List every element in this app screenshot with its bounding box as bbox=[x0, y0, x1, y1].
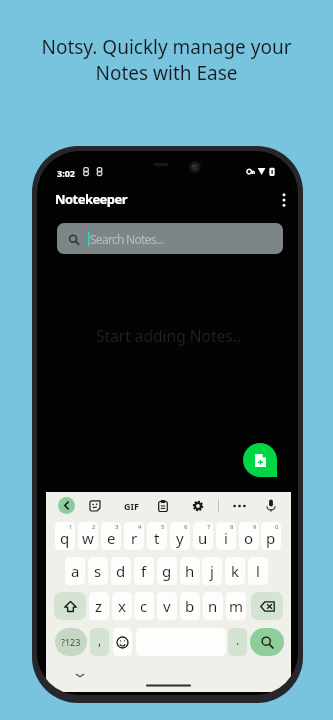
button[interactable]: Emoji bbox=[113, 628, 132, 656]
staticText: Notekeeper bbox=[55, 190, 127, 208]
button[interactable]: GIF bbox=[123, 498, 139, 513]
button[interactable]: 0 bbox=[261, 522, 281, 550]
button[interactable]: Settings bbox=[191, 499, 205, 513]
button[interactable]: Shift bbox=[54, 592, 86, 620]
button[interactable]: 1 bbox=[55, 522, 75, 550]
button[interactable]: Search bbox=[250, 628, 284, 656]
staticText: l bbox=[256, 561, 260, 581]
button[interactable]: d bbox=[111, 557, 131, 585]
staticText: b bbox=[185, 596, 195, 616]
staticText: t bbox=[154, 528, 160, 548]
staticText: p bbox=[266, 528, 276, 548]
staticText: w bbox=[82, 528, 94, 548]
button[interactable]: f bbox=[134, 557, 154, 585]
button[interactable]: Backspace bbox=[251, 592, 283, 620]
staticText: f bbox=[141, 561, 147, 581]
staticText: g bbox=[162, 561, 172, 581]
staticText: e bbox=[107, 528, 116, 548]
button[interactable]: h bbox=[180, 557, 200, 585]
button[interactable]: Back bbox=[58, 497, 75, 514]
staticText: o bbox=[244, 528, 254, 548]
staticText: ?123 bbox=[61, 636, 81, 648]
staticText: 8 bbox=[230, 523, 234, 531]
staticText: c bbox=[140, 596, 148, 616]
staticText: GIF bbox=[124, 500, 139, 512]
staticText: k bbox=[231, 561, 240, 581]
button[interactable]: . bbox=[228, 628, 247, 656]
button[interactable]: x bbox=[112, 592, 132, 620]
button[interactable]: n bbox=[203, 592, 223, 620]
button[interactable]: 2 bbox=[78, 522, 98, 550]
button[interactable]: g bbox=[157, 557, 177, 585]
staticText: x bbox=[118, 596, 126, 616]
button[interactable]: b bbox=[180, 592, 200, 620]
button[interactable]: 9 bbox=[239, 522, 259, 550]
staticText: d bbox=[116, 561, 126, 581]
button[interactable]: Add note bbox=[243, 443, 277, 477]
staticText: n bbox=[208, 596, 218, 616]
staticText: 6 bbox=[184, 523, 188, 531]
button[interactable]: m bbox=[226, 592, 246, 620]
staticText: , bbox=[98, 632, 102, 648]
button[interactable]: k bbox=[225, 557, 245, 585]
button[interactable]: 4 bbox=[124, 522, 144, 550]
staticText: Notsy. Quickly manage your Notes with Ea… bbox=[0, 34, 333, 86]
button[interactable]: More options bbox=[275, 191, 293, 209]
button[interactable]: c bbox=[134, 592, 154, 620]
staticText: q bbox=[60, 528, 70, 548]
button[interactable]: 7 bbox=[193, 522, 213, 550]
staticText: 0 bbox=[275, 523, 279, 531]
staticText: 2 bbox=[92, 523, 96, 531]
staticText: m bbox=[229, 596, 244, 616]
button[interactable]: 8 bbox=[216, 522, 236, 550]
button[interactable]: Stickers bbox=[88, 499, 102, 513]
staticText: 3 bbox=[115, 523, 119, 531]
button[interactable]: More bbox=[232, 499, 246, 513]
button[interactable]: a bbox=[65, 557, 85, 585]
staticText: 3:02 bbox=[57, 167, 75, 179]
staticText: Search Notes... bbox=[90, 231, 164, 247]
staticText: 4 bbox=[138, 523, 142, 531]
button[interactable]: z bbox=[89, 592, 109, 620]
staticText: h bbox=[185, 561, 195, 581]
button[interactable]: l bbox=[248, 557, 268, 585]
staticText: z bbox=[95, 596, 103, 616]
staticText: . bbox=[236, 632, 240, 648]
button[interactable]: 6 bbox=[170, 522, 190, 550]
button[interactable]: s bbox=[88, 557, 108, 585]
staticText: Start adding Notes.. bbox=[38, 325, 298, 346]
staticText: 7 bbox=[207, 523, 211, 531]
button[interactable]: , bbox=[90, 628, 109, 656]
staticText: i bbox=[224, 528, 228, 548]
button[interactable]: v bbox=[157, 592, 177, 620]
button[interactable]: ?123 bbox=[55, 628, 87, 656]
staticText: y bbox=[176, 528, 184, 548]
staticText: u bbox=[198, 528, 208, 548]
staticText: 9 bbox=[253, 523, 257, 531]
staticText: a bbox=[71, 561, 80, 581]
button[interactable]: Voice input bbox=[264, 498, 278, 512]
staticText: 5 bbox=[161, 523, 165, 531]
staticText: s bbox=[94, 561, 102, 581]
button[interactable]: Clipboard bbox=[156, 499, 170, 513]
staticText: j bbox=[210, 561, 214, 581]
button[interactable]: j bbox=[202, 557, 222, 585]
staticText: v bbox=[163, 596, 171, 616]
staticText: 1 bbox=[69, 523, 73, 531]
button[interactable]: Search Notes... bbox=[57, 223, 283, 254]
staticText: r bbox=[131, 528, 138, 548]
button[interactable]: 5 bbox=[147, 522, 167, 550]
button[interactable]: 3 bbox=[101, 522, 121, 550]
